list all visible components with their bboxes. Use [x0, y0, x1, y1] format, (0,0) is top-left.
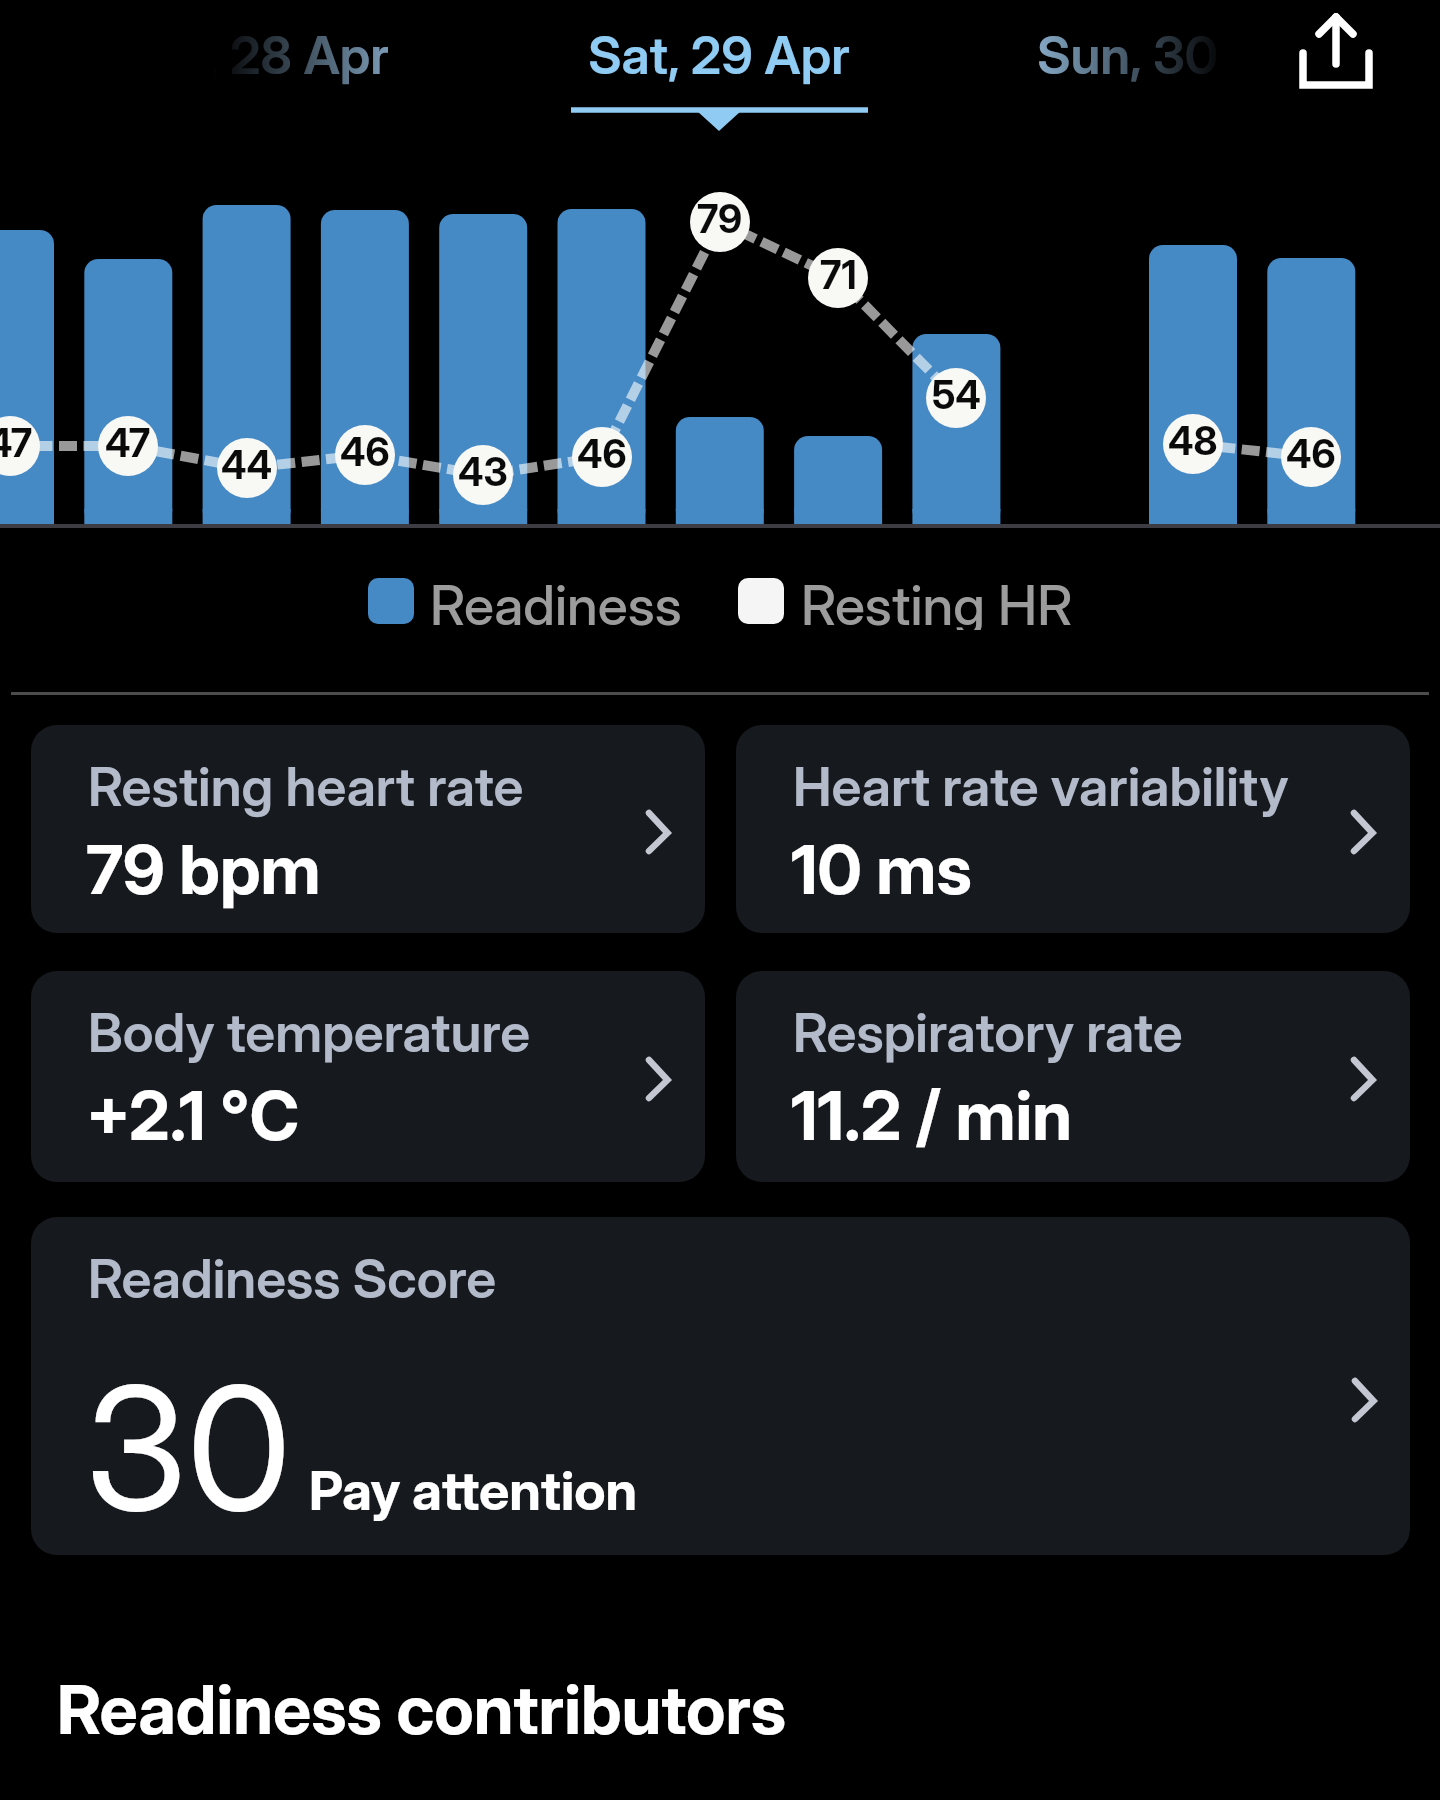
- button[interactable]: Resting heart rate 54: [926, 368, 986, 428]
- staticText: 71: [820, 251, 857, 298]
- staticText: Sat, 29 Apr: [588, 24, 850, 87]
- staticText: 43: [458, 448, 508, 495]
- staticText: 46: [1286, 430, 1336, 477]
- button[interactable]: Readiness: [368, 572, 682, 630]
- button[interactable]: Heart rate variability: [736, 725, 1410, 933]
- staticText: 79 bpm: [86, 828, 321, 910]
- staticText: Respiratory rate: [793, 1000, 1183, 1065]
- staticText: Body temperature: [88, 1000, 531, 1065]
- staticText: Fri, 28 Apr: [147, 24, 389, 87]
- button[interactable]: Body temperature: [31, 971, 705, 1182]
- button[interactable]: Resting heart rate 71: [808, 248, 868, 308]
- staticText: 30: [85, 1345, 292, 1551]
- button[interactable]: Share: [1276, 0, 1396, 120]
- button[interactable]: Resting heart rate 48: [1163, 414, 1223, 474]
- staticText: 46: [577, 430, 627, 477]
- button[interactable]: Resting heart rate 46: [572, 427, 632, 487]
- button[interactable]: Resting heart rate 47: [0, 416, 40, 476]
- button[interactable]: Resting heart rate 44: [217, 438, 277, 498]
- staticText: Sun, 30 Apr: [1037, 24, 1315, 87]
- staticText: 47: [0, 419, 33, 466]
- staticText: Readiness: [430, 572, 682, 630]
- staticText: 54: [932, 371, 981, 418]
- staticText: 46: [340, 428, 390, 475]
- button[interactable]: Resting heart rate: [31, 725, 705, 933]
- button[interactable]: Respiratory rate: [736, 971, 1410, 1182]
- button[interactable]: Resting heart rate 43: [453, 445, 513, 505]
- button[interactable]: Resting heart rate 47: [98, 416, 158, 476]
- staticText: 47: [105, 419, 151, 466]
- staticText: Heart rate variability: [793, 754, 1289, 819]
- button[interactable]: Resting heart rate 46: [335, 425, 395, 485]
- button[interactable]: Resting heart rate 79: [690, 192, 750, 252]
- button[interactable]: Sun, 30 Apr: [966, 16, 1386, 94]
- button[interactable]: Resting HR: [738, 572, 1073, 630]
- button[interactable]: Sat, 29 Apr: [509, 16, 929, 94]
- staticText: 44: [221, 441, 273, 488]
- staticText: Resting HR: [801, 572, 1073, 630]
- staticText: 10 ms: [791, 828, 972, 910]
- staticText: Readiness contributors: [57, 1668, 787, 1750]
- staticText: +2.1 °C: [86, 1074, 300, 1156]
- staticText: 79: [697, 195, 743, 242]
- staticText: 11.2 / min: [791, 1074, 1072, 1156]
- staticText: Pay attention: [309, 1458, 638, 1523]
- button[interactable]: Fri, 28 Apr: [58, 16, 478, 94]
- staticText: 48: [1168, 417, 1218, 464]
- button[interactable]: Resting heart rate 46: [1281, 427, 1341, 487]
- staticText: Resting heart rate: [88, 754, 524, 819]
- button[interactable]: Readiness Score: [31, 1217, 1410, 1555]
- staticText: Readiness Score: [88, 1246, 497, 1311]
